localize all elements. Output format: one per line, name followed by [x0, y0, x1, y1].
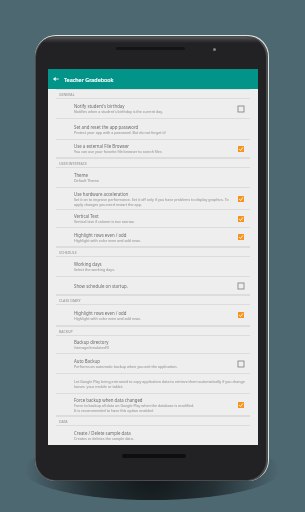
staticText: Backup directory — [74, 339, 109, 345]
staticText: Use a external File Browser — [74, 143, 130, 149]
staticText: Force to backup all data on Google Play … — [74, 403, 195, 408]
staticText: You can use your favorite file browser t… — [74, 149, 162, 154]
staticText: Default Theme — [74, 178, 99, 183]
staticText: Notify student's birthday — [74, 103, 125, 109]
staticText: Set it on to improve performance. Set it… — [74, 197, 229, 202]
button[interactable]: Highlight rows even / odd — [48, 228, 258, 246]
button[interactable]: Working days — [48, 257, 258, 276]
staticText: looses your mobile or tablet. — [74, 384, 124, 389]
staticText: Performs an automatic backup when you ex… — [74, 364, 178, 369]
staticText: Show schedule on startup. — [74, 283, 128, 289]
staticText: Working days — [74, 261, 102, 267]
staticText: Teacher Gradebook — [64, 76, 114, 83]
button[interactable]: Show schedule on startup. — [48, 277, 258, 294]
button[interactable]: Use a external File Browser — [48, 140, 258, 157]
button[interactable]: Theme — [48, 168, 258, 187]
button[interactable]: Set and reset the app password — [48, 119, 258, 139]
button[interactable]: Back — [48, 69, 64, 89]
button[interactable]: Force backup when data changed — [48, 394, 258, 415]
staticText: Use hardware acceleration — [74, 191, 129, 197]
button[interactable]: Create / Delete sample data — [48, 426, 258, 445]
staticText: Highlight rows even / odd — [74, 310, 127, 316]
staticText: CLASS DIARY — [59, 298, 81, 303]
staticText: Vertical text if column is too narrow. — [74, 219, 135, 224]
button[interactable]: Notify student's birthday — [48, 99, 258, 118]
staticText: Highlight rows even / odd — [74, 232, 127, 238]
staticText: USER INTERFACE — [59, 161, 87, 166]
staticText: /storage/emulated/0 — [74, 345, 110, 350]
button[interactable]: Let Google Play being entrusted to copy … — [48, 374, 258, 393]
button[interactable]: Backup directory — [48, 336, 258, 353]
staticText: BACKUP — [59, 329, 73, 334]
button[interactable]: Highlight rows even / odd — [48, 305, 258, 325]
staticText: Theme — [74, 172, 89, 178]
staticText: DATA — [59, 419, 68, 424]
button[interactable]: Vertical Text — [48, 210, 258, 227]
staticText: Creates or deletes the sample data. — [74, 436, 134, 441]
staticText: Highlight with color even and add rows. — [74, 316, 141, 321]
staticText: Set and reset the app password — [74, 124, 139, 130]
staticText: Select the working days. — [74, 267, 115, 272]
staticText: Highlight with color even and add rows. — [74, 238, 141, 243]
button[interactable]: Use hardware acceleration — [48, 188, 258, 209]
staticText: Vertical Text — [74, 213, 99, 219]
staticText: Force backup when data changed — [74, 397, 143, 403]
staticText: Notifies when a student's birthday is th… — [74, 109, 163, 114]
staticText: It is recommended to have this option en… — [74, 408, 154, 413]
staticText: Let Google Play being entrusted to copy … — [74, 379, 248, 384]
staticText: GENERAL — [59, 92, 75, 97]
staticText: Create / Delete sample data — [74, 430, 131, 436]
staticText: Protect your app with a password. But do… — [74, 130, 166, 135]
staticText: SCHEDULE — [59, 250, 77, 255]
button[interactable]: Auto Backup — [48, 354, 258, 373]
staticText: apply changes you need restart the app. — [74, 202, 142, 207]
staticText: Auto Backup — [74, 358, 100, 364]
